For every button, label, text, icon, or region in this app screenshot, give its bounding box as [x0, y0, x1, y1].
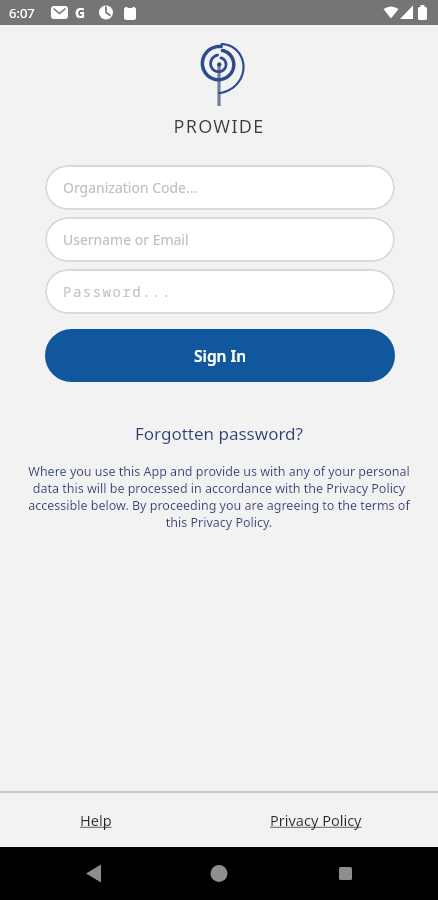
staticText: G — [75, 3, 86, 22]
staticText: PROWIDE — [0, 114, 438, 139]
button[interactable]: Privacy Policy — [270, 810, 362, 830]
button[interactable]: Help — [80, 810, 112, 830]
button[interactable] — [146, 847, 292, 900]
button[interactable] — [0, 847, 146, 900]
staticText: Password... — [63, 282, 172, 301]
staticText: Where you use this App and provide us wi… — [26, 463, 412, 531]
button[interactable]: Forgotten password? — [135, 422, 303, 445]
button[interactable]: Password... — [45, 269, 395, 314]
staticText: 6:07 — [9, 4, 35, 22]
staticText: Username or Email — [63, 230, 189, 249]
button[interactable]: Username or Email — [45, 217, 395, 262]
staticText: Organization Code... — [63, 178, 198, 197]
button[interactable]: Sign In — [45, 329, 395, 382]
button[interactable] — [292, 847, 438, 900]
button[interactable]: Organization Code... — [45, 165, 395, 210]
staticText: Sign In — [194, 345, 247, 366]
